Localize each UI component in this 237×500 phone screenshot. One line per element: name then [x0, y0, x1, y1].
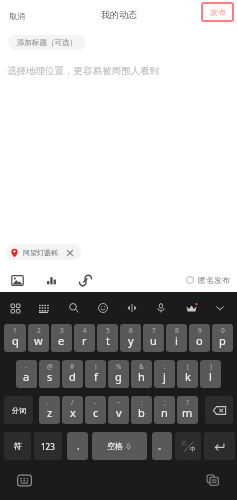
staticText: )	[210, 362, 212, 371]
button[interactable]: Keyboard layouts	[6, 299, 24, 317]
button[interactable]: 取消	[4, 9, 30, 23]
button[interactable]: Number pad	[35, 299, 53, 317]
staticText: :	[164, 362, 166, 371]
button[interactable]: 123	[34, 432, 62, 460]
button[interactable]: )	[200, 360, 221, 388]
staticText: 符	[14, 441, 22, 451]
button[interactable]: Emoji	[94, 299, 112, 317]
button[interactable]: ，	[67, 432, 88, 460]
button[interactable]: 添加标题（可选）	[8, 35, 86, 50]
button[interactable]: 4	[74, 324, 95, 352]
staticText: 5	[106, 326, 110, 335]
button[interactable]: Switch English Chinese input	[175, 432, 201, 460]
staticText: o	[196, 333, 203, 348]
staticText: y	[128, 333, 134, 348]
staticText: 中	[190, 446, 196, 453]
staticText: p	[219, 333, 226, 348]
staticText: t	[106, 333, 110, 348]
button[interactable]: /	[62, 396, 83, 424]
button[interactable]: @	[39, 360, 60, 388]
button[interactable]: 。	[152, 432, 172, 460]
button[interactable]: -	[85, 396, 106, 424]
staticText: 4	[83, 326, 87, 335]
button[interactable]: :	[154, 360, 175, 388]
staticText: 选择地理位置，更容易被周围人看到	[7, 65, 159, 77]
staticText: 8	[175, 326, 179, 335]
staticText: ，	[74, 441, 82, 451]
staticText: x	[70, 405, 76, 420]
staticText: /	[71, 398, 74, 407]
staticText: f	[94, 369, 98, 384]
button[interactable]: 1	[4, 324, 26, 352]
button[interactable]: :	[131, 396, 152, 424]
staticText: z	[47, 405, 53, 420]
button[interactable]: Add image	[10, 273, 25, 288]
button[interactable]: ~	[108, 396, 129, 424]
staticText: v	[116, 405, 122, 420]
button[interactable]: &	[131, 360, 152, 388]
button[interactable]: 阿望灯盏糕	[6, 244, 81, 260]
button[interactable]: 分词	[4, 396, 33, 424]
staticText: j	[163, 369, 166, 384]
button[interactable]: 、	[39, 396, 60, 424]
button[interactable]: Clipboard	[204, 471, 222, 489]
button[interactable]: Backspace	[205, 396, 233, 424]
staticText: g	[115, 369, 122, 384]
staticText: 9	[198, 326, 202, 335]
button[interactable]: Edit cursor	[123, 299, 141, 317]
button[interactable]: 6	[120, 324, 141, 352]
button[interactable]: Collapse keyboard	[211, 299, 229, 317]
button[interactable]: Search	[65, 299, 83, 317]
button[interactable]: %	[108, 360, 129, 388]
staticText: 发布	[210, 7, 226, 17]
staticText: 分词	[12, 406, 26, 415]
button[interactable]: Remove location	[64, 247, 75, 258]
staticText: 7	[152, 326, 156, 335]
staticText: 3	[60, 326, 64, 335]
staticText: i	[175, 333, 178, 348]
staticText: d	[69, 369, 76, 384]
staticText: k	[185, 369, 191, 384]
staticText: !	[95, 362, 97, 371]
button[interactable]: 符	[4, 432, 31, 460]
button[interactable]: Enter	[204, 432, 235, 460]
button[interactable]: Premium	[182, 299, 200, 317]
staticText: -	[94, 398, 97, 407]
staticText: 我的动态	[101, 9, 137, 20]
button[interactable]: -	[16, 360, 37, 388]
button[interactable]: ;	[154, 396, 175, 424]
staticText: q	[12, 333, 19, 348]
staticText: %	[116, 362, 122, 371]
button[interactable]: !	[85, 360, 106, 388]
button[interactable]: 匿名发布	[185, 273, 231, 287]
button[interactable]: 7	[143, 324, 164, 352]
button[interactable]: 0	[212, 324, 233, 352]
staticText: s	[47, 369, 53, 384]
staticText: 取消	[9, 11, 25, 21]
staticText: 1	[13, 326, 17, 335]
staticText: 。	[158, 441, 166, 451]
button[interactable]: 空格	[92, 432, 147, 460]
button[interactable]: #	[62, 360, 83, 388]
button[interactable]: (	[177, 360, 198, 388]
button[interactable]: Poll	[44, 273, 59, 288]
button[interactable]: 5	[97, 324, 118, 352]
button[interactable]: 2	[28, 324, 49, 352]
button[interactable]: Link	[78, 273, 93, 288]
staticText: 匿名发布	[198, 275, 230, 285]
button[interactable]: 发布	[201, 2, 234, 22]
staticText: 添加标题（可选）	[17, 38, 77, 47]
staticText: &	[139, 362, 144, 371]
button[interactable]: Voice input	[152, 299, 170, 317]
button[interactable]: ?	[177, 396, 198, 424]
staticText: 123	[41, 441, 55, 452]
staticText: c	[93, 405, 99, 420]
button[interactable]: 3	[51, 324, 72, 352]
button[interactable]: 8	[166, 324, 187, 352]
staticText: n	[161, 405, 168, 420]
button[interactable]: 9	[189, 324, 210, 352]
staticText: 、	[46, 398, 53, 406]
button[interactable]: Switch keyboard	[15, 471, 33, 489]
staticText: :	[141, 398, 143, 407]
staticText: 2	[37, 326, 41, 335]
